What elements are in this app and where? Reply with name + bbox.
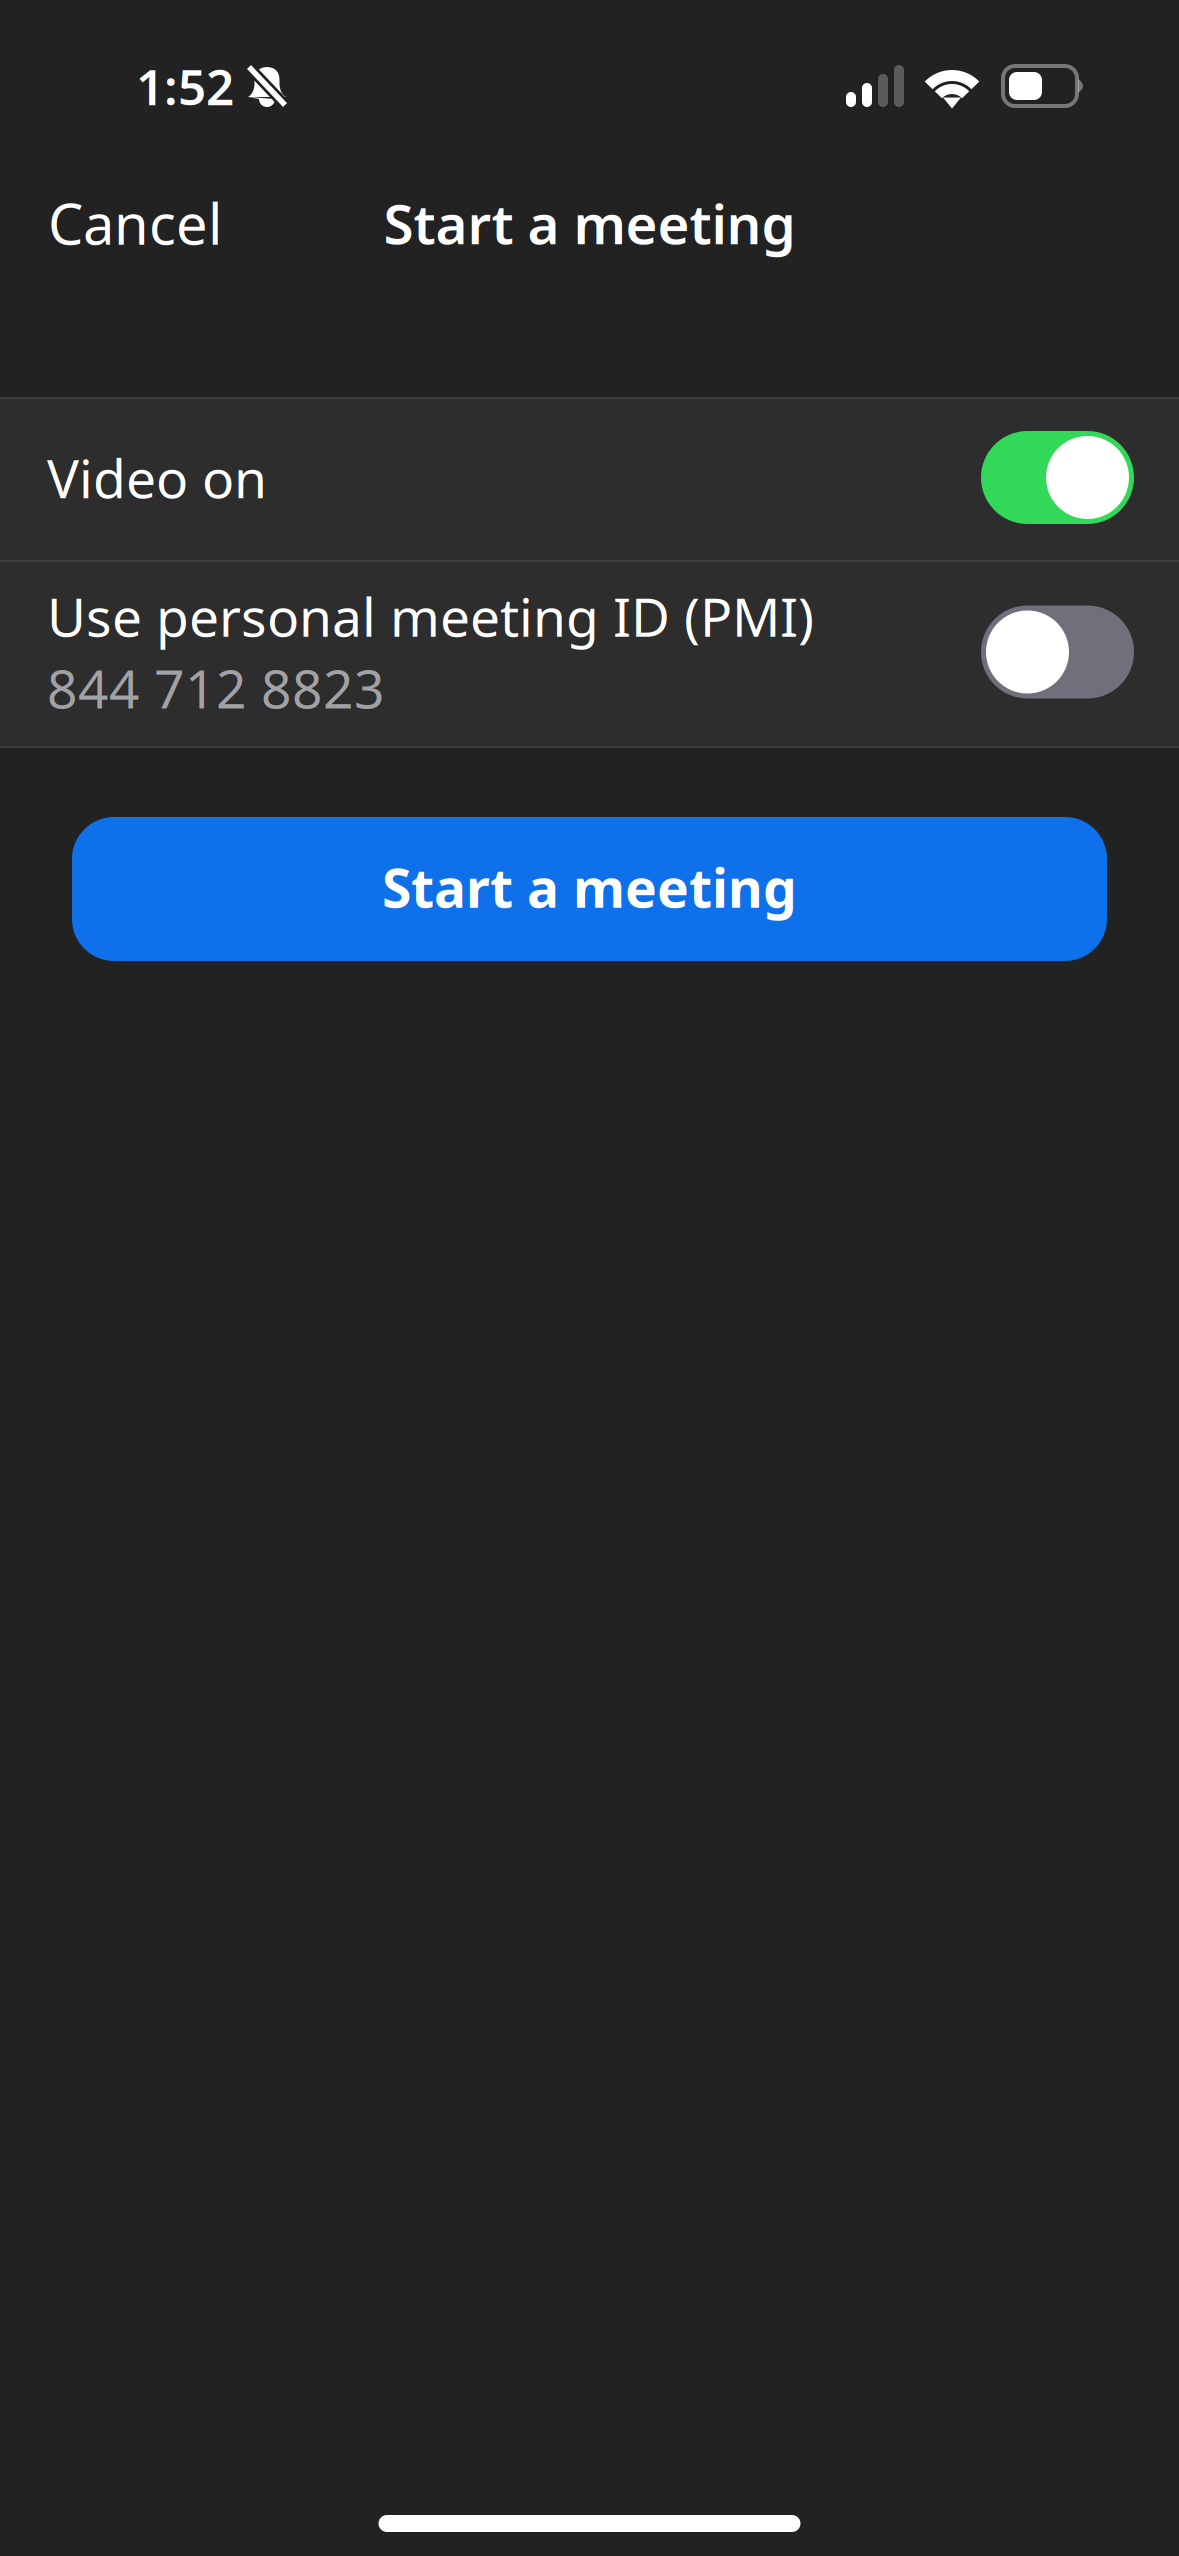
staticText: Start a meeting (382, 852, 797, 922)
staticText: 1:52 (136, 53, 234, 119)
button[interactable]: Use personal meeting ID (PMI) (0, 562, 1179, 746)
staticText: Start a meeting (383, 187, 795, 259)
button[interactable]: Video on (0, 399, 1179, 560)
staticText: Video on (47, 442, 267, 513)
button[interactable]: Cancel (0, 166, 270, 280)
button[interactable]: Use personal meeting ID (PMI) (981, 605, 1134, 698)
staticText: 844 712 8823 (47, 652, 385, 723)
staticText: Use personal meeting ID (PMI) (47, 581, 814, 651)
button[interactable]: Start a meeting (72, 817, 1107, 961)
button[interactable]: Video on (981, 431, 1134, 524)
staticText: Cancel (48, 186, 222, 260)
